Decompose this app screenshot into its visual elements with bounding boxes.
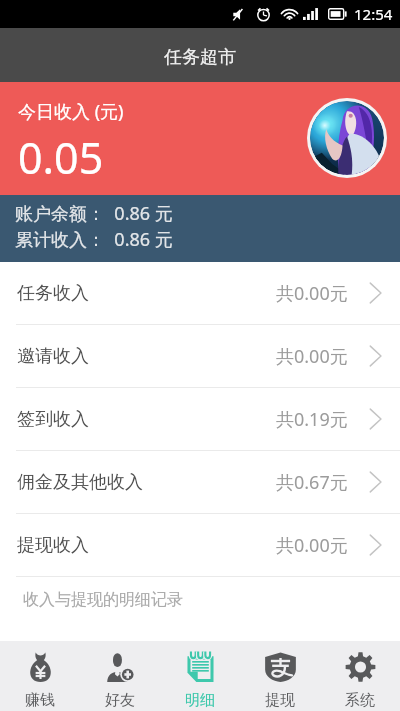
- staticText: 明细: [185, 691, 215, 710]
- staticText: 任务收入: [17, 282, 89, 305]
- staticText: 0.05: [18, 128, 104, 187]
- staticText: 共0.00元: [276, 344, 348, 369]
- staticText: 12:54: [354, 4, 393, 24]
- button[interactable]: Details: [160, 641, 240, 711]
- staticText: 账户余额： 0.86 元: [15, 201, 173, 226]
- button[interactable]: 任务收入: [0, 262, 400, 325]
- staticText: 赚钱: [25, 691, 55, 710]
- staticText: 系统: [345, 691, 375, 710]
- button[interactable]: Settings: [320, 641, 400, 711]
- staticText: 任务超市: [164, 46, 236, 69]
- staticText: 提现收入: [17, 534, 89, 557]
- staticText: 签到收入: [17, 408, 89, 431]
- staticText: 共0.00元: [276, 281, 348, 306]
- staticText: 提现: [265, 691, 295, 710]
- staticText: 共0.67元: [276, 470, 348, 495]
- staticText: 共0.19元: [276, 407, 348, 432]
- staticText: 邀请收入: [17, 345, 89, 368]
- button[interactable]: 提现收入: [0, 514, 400, 577]
- button[interactable]: Earn money: [0, 641, 80, 711]
- button[interactable]: Friends: [80, 641, 160, 711]
- staticText: 佣金及其他收入: [17, 471, 143, 494]
- staticText: 今日收入 (元): [18, 99, 124, 124]
- staticText: 收入与提现的明细记录: [23, 590, 183, 610]
- staticText: 好友: [105, 691, 135, 710]
- button[interactable]: Profile avatar: [310, 101, 384, 175]
- button[interactable]: 签到收入: [0, 388, 400, 451]
- button[interactable]: 邀请收入: [0, 325, 400, 388]
- staticText: 共0.00元: [276, 533, 348, 558]
- staticText: 累计收入： 0.86 元: [15, 227, 173, 252]
- button[interactable]: Withdraw: [240, 641, 320, 711]
- button[interactable]: 佣金及其他收入: [0, 451, 400, 514]
